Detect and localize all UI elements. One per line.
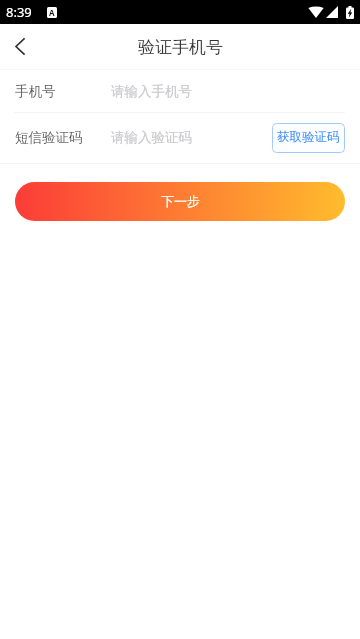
staticText: 8:39 — [6, 3, 32, 21]
staticText: 验证手机号 — [138, 37, 223, 58]
staticText: 请输入手机号 — [111, 83, 192, 100]
staticText: 获取验证码 — [277, 129, 340, 145]
staticText: 手机号 — [15, 83, 56, 100]
staticText: 短信验证码 — [15, 129, 83, 146]
button[interactable]: 请输入验证码 — [83, 113, 272, 163]
button[interactable]: 请输入手机号 — [56, 70, 345, 112]
staticText: 请输入验证码 — [111, 129, 192, 146]
button[interactable]: 下一步 — [15, 182, 345, 221]
button[interactable]: 获取验证码 — [272, 123, 345, 153]
button[interactable]: Back — [0, 24, 44, 69]
staticText: A — [49, 7, 55, 18]
staticText: 下一步 — [161, 193, 200, 209]
